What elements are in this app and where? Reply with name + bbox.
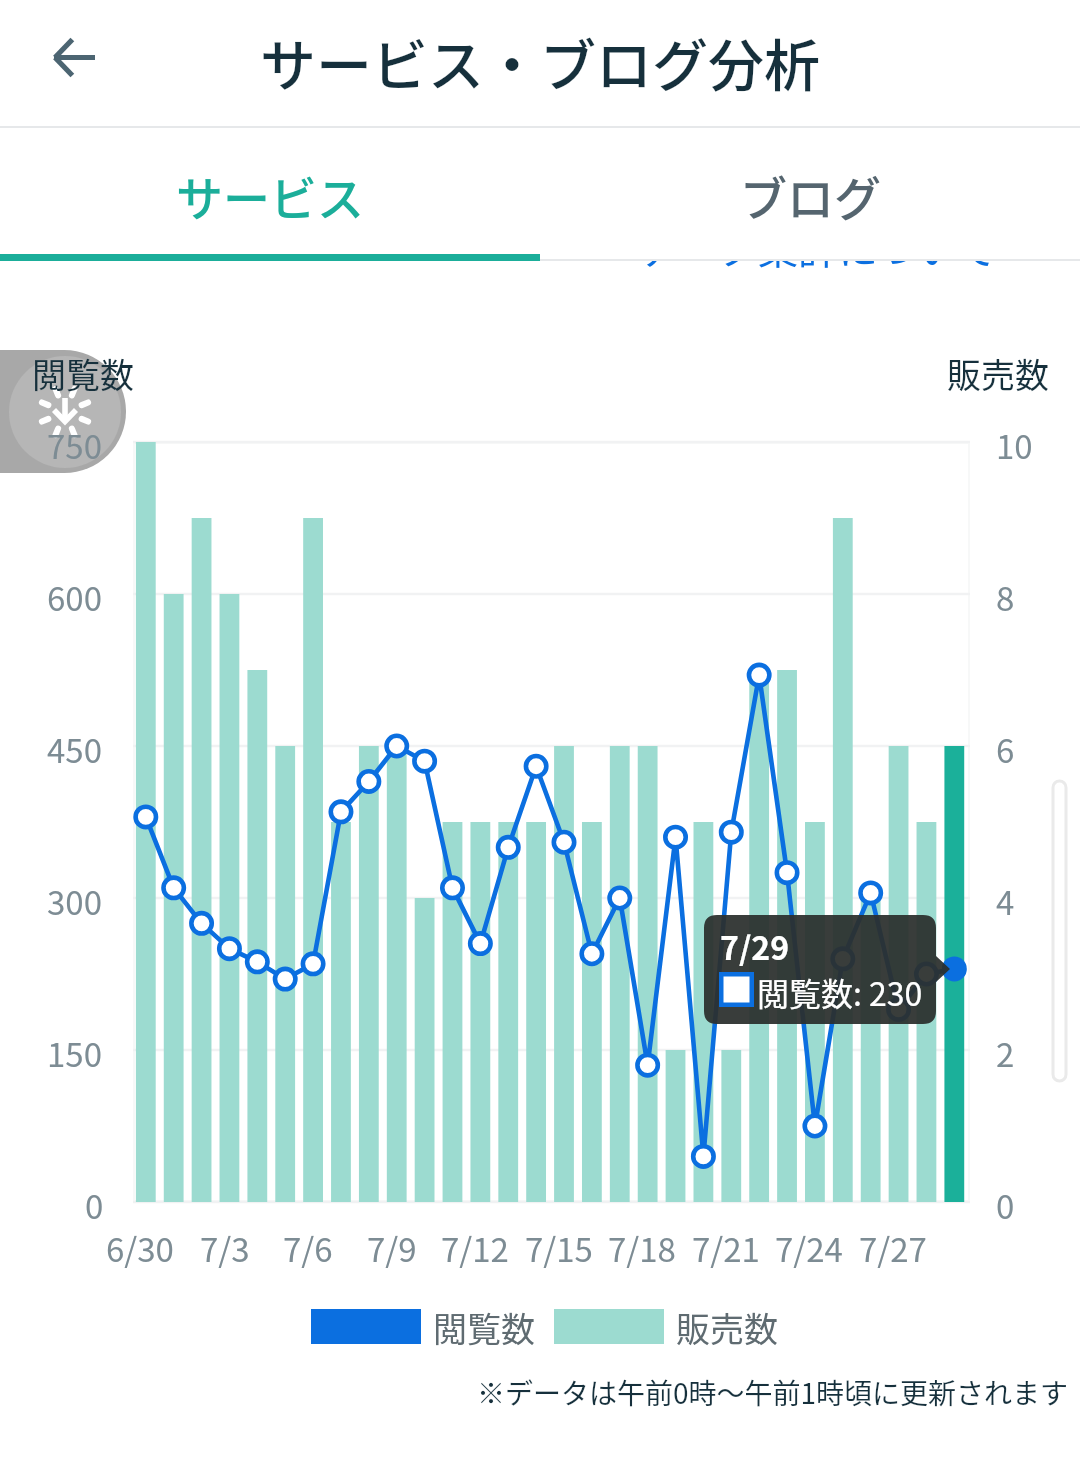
staticText: 6 <box>996 725 1015 773</box>
staticText: ブログ <box>740 161 881 229</box>
staticText: 300 <box>47 877 102 925</box>
staticText: 7/27 <box>859 1224 927 1272</box>
staticText: 閲覧数 <box>433 1303 535 1352</box>
other: Refreshing <box>0 350 126 473</box>
button[interactable]: 閲覧数 <box>311 1303 523 1352</box>
button[interactable]: 販売数 <box>554 1303 766 1352</box>
staticText: 10 <box>996 421 1033 469</box>
staticText: 600 <box>47 573 102 621</box>
staticText: サービス・ブログ分析 <box>260 21 820 102</box>
staticText: 7/3 <box>200 1224 250 1272</box>
staticText: 閲覧数: 230 <box>757 969 923 1015</box>
staticText: サービス <box>176 161 364 229</box>
staticText: 7/18 <box>608 1224 676 1272</box>
staticText: 閲覧数 <box>32 349 134 398</box>
button[interactable]: ブログ <box>540 128 1080 261</box>
staticText: ※データは午前0時〜午前1時頃に更新されます <box>477 1372 1069 1413</box>
button[interactable]: Back <box>36 19 112 95</box>
staticText: 7/24 <box>775 1224 843 1272</box>
staticText: 750 <box>47 421 102 469</box>
staticText: 0 <box>996 1181 1015 1229</box>
staticText: 6/30 <box>106 1224 174 1272</box>
staticText: 7/6 <box>283 1224 333 1272</box>
staticText: 150 <box>47 1029 102 1077</box>
staticText: 7/9 <box>367 1224 417 1272</box>
staticText: 0 <box>85 1181 104 1229</box>
staticText: 8 <box>996 573 1015 621</box>
staticText: 2 <box>996 1029 1015 1077</box>
button[interactable]: サービス <box>0 128 540 261</box>
staticText: 7/12 <box>441 1224 509 1272</box>
staticText: 販売数 <box>947 349 1049 398</box>
button[interactable]: データ集計について <box>638 218 997 276</box>
staticText: 7/21 <box>692 1224 760 1272</box>
staticText: 450 <box>47 725 102 773</box>
staticText: 4 <box>996 877 1015 925</box>
staticText: 7/29 <box>720 923 790 969</box>
staticText: 7/15 <box>525 1224 593 1272</box>
staticText: 販売数 <box>676 1303 778 1352</box>
